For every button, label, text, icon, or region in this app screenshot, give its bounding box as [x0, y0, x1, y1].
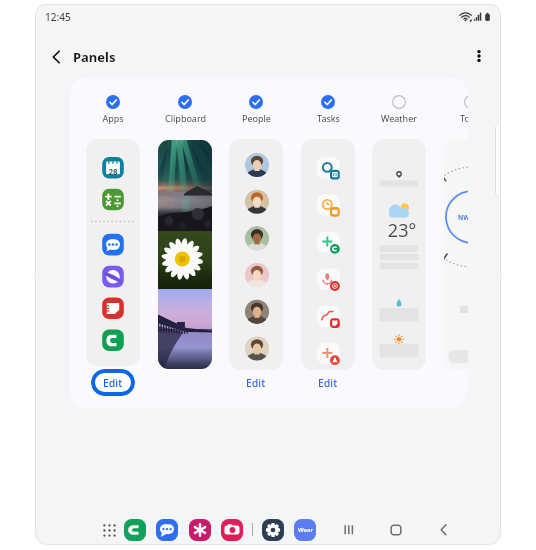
- staticText: Edit: [318, 376, 338, 390]
- button[interactable]: Phone: [124, 519, 146, 541]
- button[interactable]: Edit: [234, 375, 278, 391]
- button[interactable]: Settings: [262, 519, 284, 541]
- button[interactable]: More options: [463, 40, 495, 72]
- button[interactable]: Back: [428, 519, 460, 541]
- button[interactable]: Apps panel: [86, 139, 140, 366]
- button[interactable]: Edge panel handle: [495, 121, 501, 199]
- button[interactable]: Apps: [80, 95, 146, 121]
- button[interactable]: Edit: [306, 375, 350, 391]
- button[interactable]: Tools: [438, 95, 468, 121]
- button[interactable]: Navigate up: [41, 41, 73, 73]
- button[interactable]: Edit: [91, 369, 135, 396]
- staticText: Edit: [246, 376, 266, 390]
- button[interactable]: People panel: [229, 139, 283, 370]
- button[interactable]: Clipboard: [152, 95, 218, 121]
- staticText: Wear: [298, 526, 313, 534]
- staticText: 23°: [375, 218, 426, 243]
- staticText: Weather: [381, 112, 417, 124]
- button[interactable]: Messages: [156, 519, 178, 541]
- button[interactable]: Home: [380, 519, 412, 541]
- staticText: NW: [458, 213, 468, 222]
- staticText: Edit: [103, 376, 123, 390]
- staticText: Panels: [73, 48, 116, 66]
- button[interactable]: Wear: [294, 519, 316, 541]
- staticText: Apps: [102, 112, 124, 124]
- button[interactable]: Camera: [221, 519, 243, 541]
- staticText: Clipboard: [165, 112, 206, 124]
- button[interactable]: Tasks: [295, 95, 361, 121]
- button[interactable]: All apps: [98, 519, 121, 542]
- button[interactable]: Clipboard panel: [158, 140, 212, 369]
- staticText: 28: [86, 166, 140, 177]
- button[interactable]: Tasks panel: [301, 139, 355, 370]
- button[interactable]: Recents: [333, 519, 365, 541]
- staticText: Tools: [460, 112, 468, 124]
- staticText: People: [242, 112, 271, 124]
- staticText: 12:45: [45, 10, 71, 24]
- button[interactable]: Gallery: [189, 519, 211, 541]
- button[interactable]: Weather panel: [372, 139, 426, 370]
- button[interactable]: Weather: [366, 95, 432, 121]
- button[interactable]: Tools panel: [444, 139, 468, 370]
- button[interactable]: People: [223, 95, 289, 121]
- staticText: Tasks: [317, 112, 340, 124]
